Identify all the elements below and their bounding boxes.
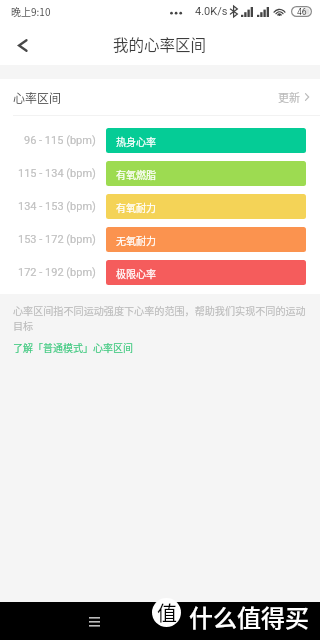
button[interactable]: 心率区间: [0, 79, 320, 115]
button[interactable]: Back: [0, 22, 43, 65]
staticText: 什么值得买: [189, 599, 309, 634]
button[interactable]: Menu: [80, 607, 108, 635]
staticText: 有氧耐力: [116, 200, 156, 214]
button[interactable]: 了解「普通模式」心率区间: [13, 340, 133, 354]
staticText: 有氧燃脂: [116, 167, 156, 181]
staticText: 晚上9:10: [11, 4, 51, 18]
staticText: 115 - 134 (bpm): [18, 167, 96, 180]
staticText: 134 - 153 (bpm): [18, 200, 96, 213]
staticText: 96 - 115 (bpm): [24, 134, 96, 147]
staticText: 153 - 172 (bpm): [18, 233, 96, 246]
staticText: 172 - 192 (bpm): [18, 266, 96, 279]
staticText: 无氧耐力: [116, 233, 156, 247]
staticText: 心率区间指不同运动强度下心率的范围，帮助我们实现不同的运动目标: [13, 303, 307, 333]
staticText: 值: [157, 598, 177, 627]
staticText: 4.0K/s: [195, 5, 228, 18]
staticText: 心率区间: [13, 89, 62, 106]
staticText: 热身心率: [116, 134, 156, 148]
staticText: 46: [297, 7, 307, 17]
staticText: 更新: [278, 89, 300, 105]
staticText: 我的心率区间: [113, 33, 207, 55]
staticText: 极限心率: [116, 266, 156, 280]
